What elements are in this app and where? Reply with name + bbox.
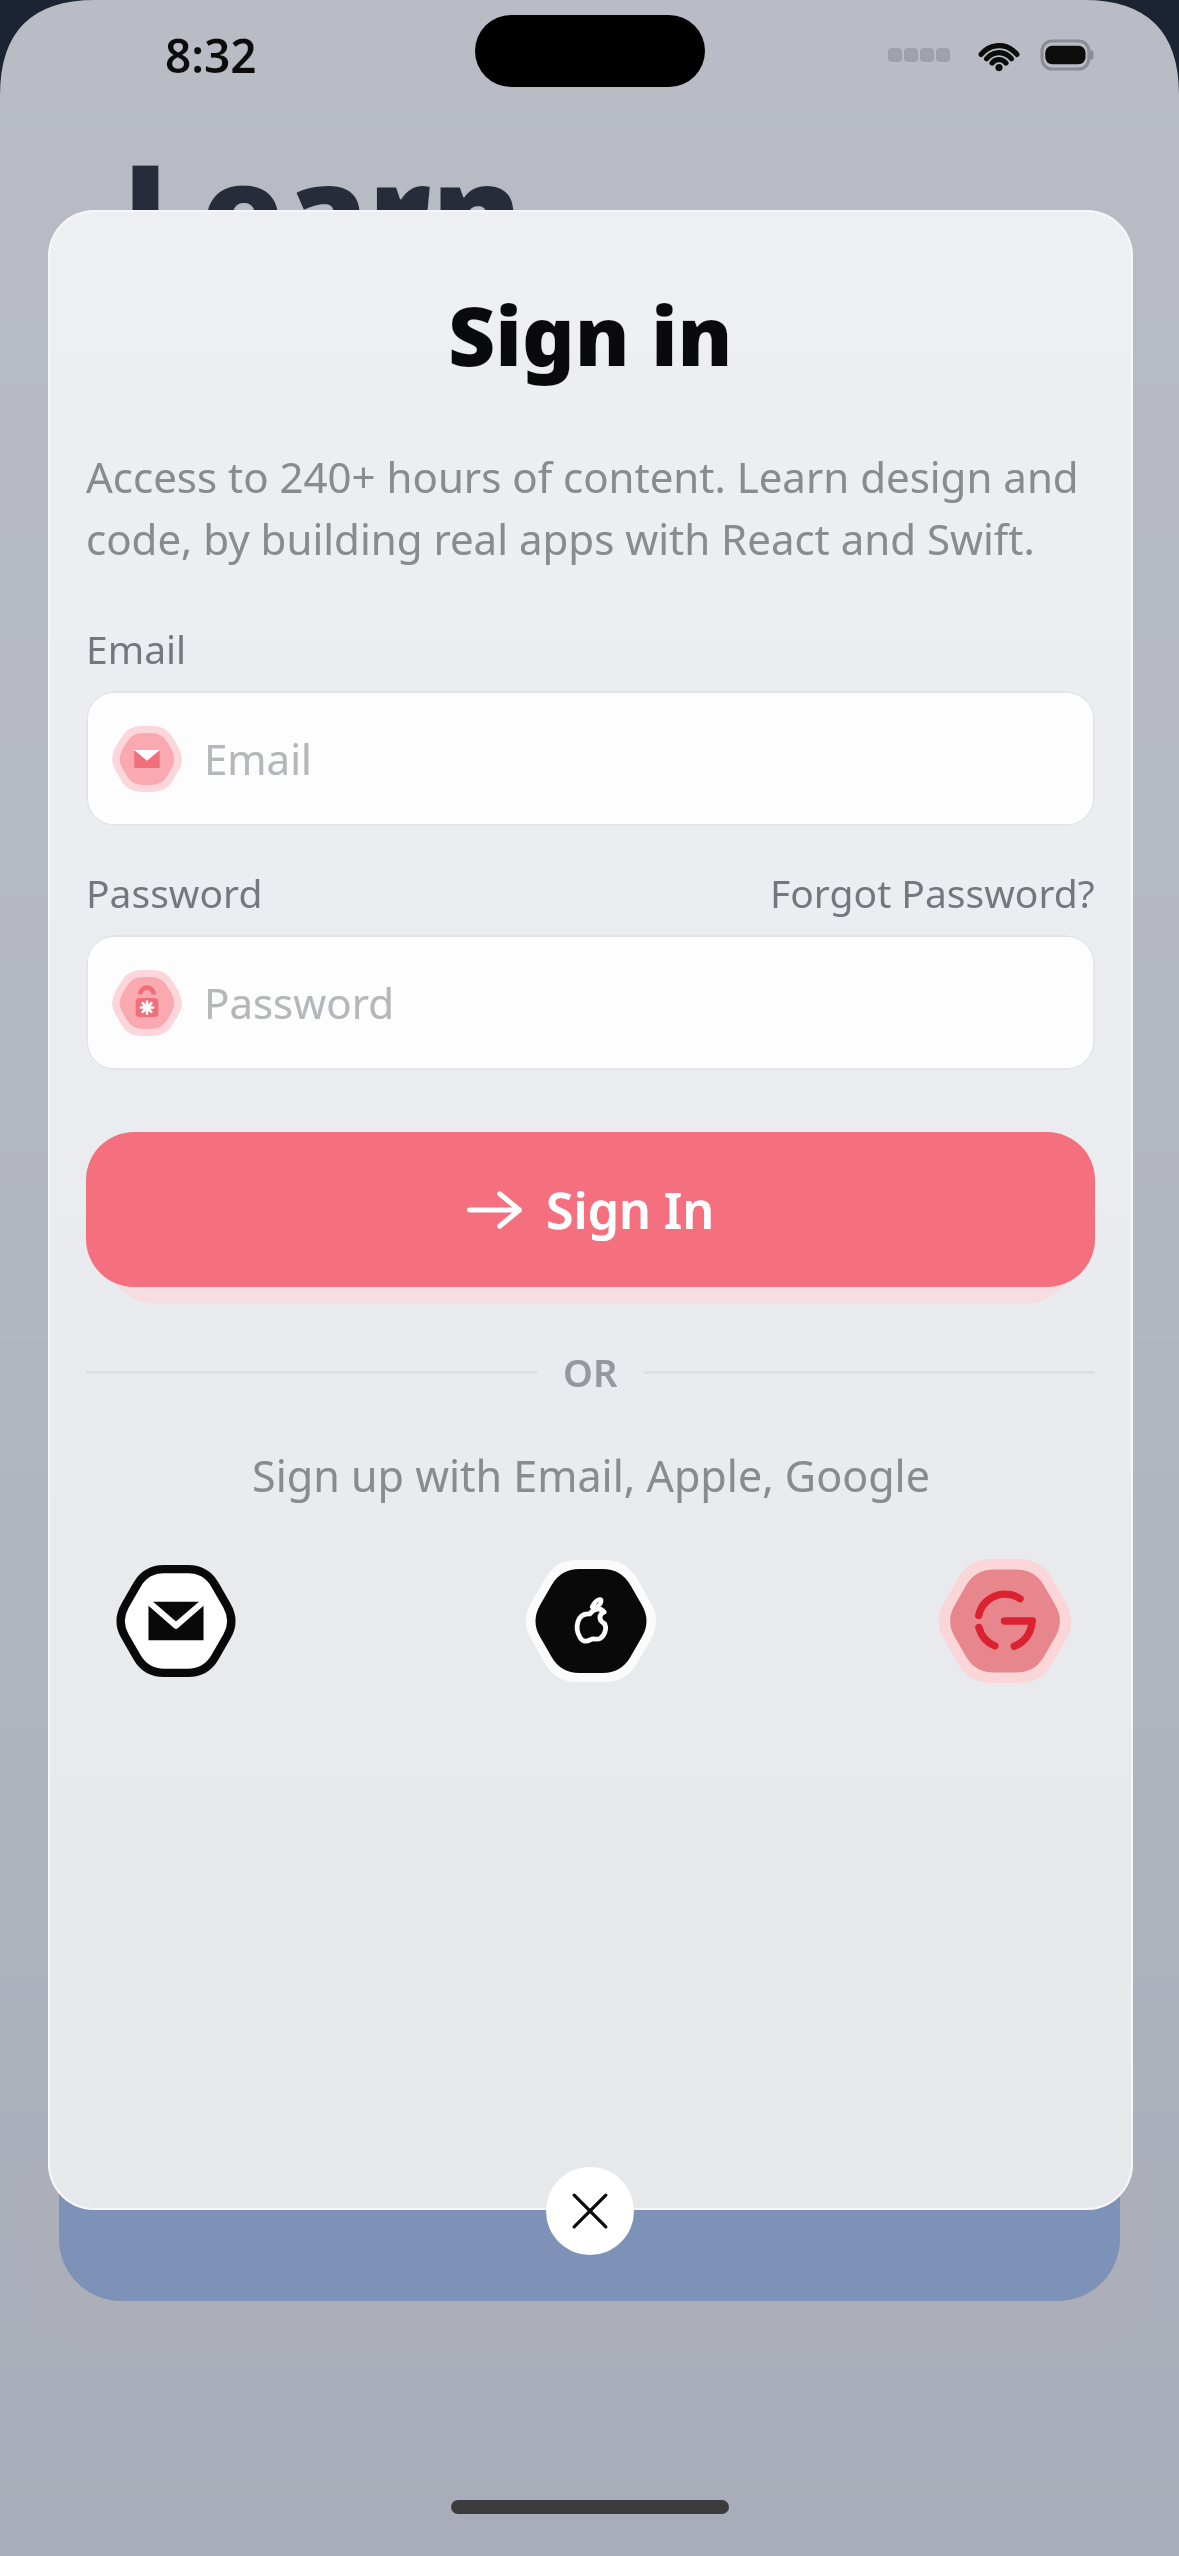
staticText: 8:32 <box>165 24 257 87</box>
staticText: Access to 240+ hours of content. Learn d… <box>86 448 1095 567</box>
button[interactable]: Forgot Password? <box>770 866 1095 919</box>
staticText: Password <box>86 866 263 919</box>
button[interactable]: Close <box>546 2167 634 2255</box>
button[interactable]: Sign In <box>86 1132 1095 1287</box>
staticText: Email <box>204 730 312 787</box>
staticText: Sign in <box>448 278 733 390</box>
staticText: Forgot Password? <box>770 866 1095 919</box>
button[interactable]: Sign up with Apple <box>511 1541 671 1701</box>
button[interactable]: Sign up with Email <box>96 1541 256 1701</box>
button[interactable]: Password <box>86 935 1095 1070</box>
staticText: Sign up with Email, Apple, Google <box>252 1446 930 1505</box>
staticText: Sign In <box>546 1176 715 1244</box>
staticText: Password <box>204 974 394 1031</box>
staticText: Learn <box>122 118 522 302</box>
button[interactable]: Email <box>86 691 1095 826</box>
staticText: Email <box>86 622 187 675</box>
staticText: OR <box>563 1346 618 1398</box>
button[interactable]: Sign up with Google <box>925 1541 1085 1701</box>
